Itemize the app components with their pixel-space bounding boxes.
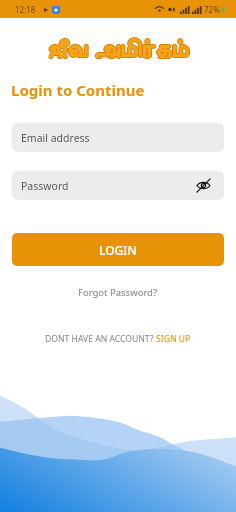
staticText: Email address [21, 131, 90, 145]
staticText: Login to Continue [11, 80, 145, 100]
staticText: DONT HAVE AN ACCOUNT? [45, 333, 156, 345]
staticText: 72% [204, 4, 220, 15]
button[interactable]: Password [12, 171, 224, 200]
button[interactable]: SIGN UP [156, 333, 191, 345]
staticText: Password [21, 179, 69, 193]
staticText: LOGIN [99, 242, 137, 258]
staticText: ஜீவ அமிர்தம் [47, 29, 189, 57]
button[interactable]: LOGIN [12, 233, 224, 266]
staticText: 12:18 [15, 4, 36, 15]
button[interactable]: Email address [12, 123, 224, 152]
other: Show password [196, 178, 211, 193]
staticText: ஜீவ அமிர்தம் [47, 30, 189, 58]
button[interactable]: Forgot Password? [76, 284, 160, 301]
staticText: ஜீவ அமிர்தம் [46, 30, 188, 58]
staticText: ஜீவ அமிர்தம் [47, 31, 189, 59]
staticText: ஜீவ அமிர்தம் [48, 30, 190, 58]
